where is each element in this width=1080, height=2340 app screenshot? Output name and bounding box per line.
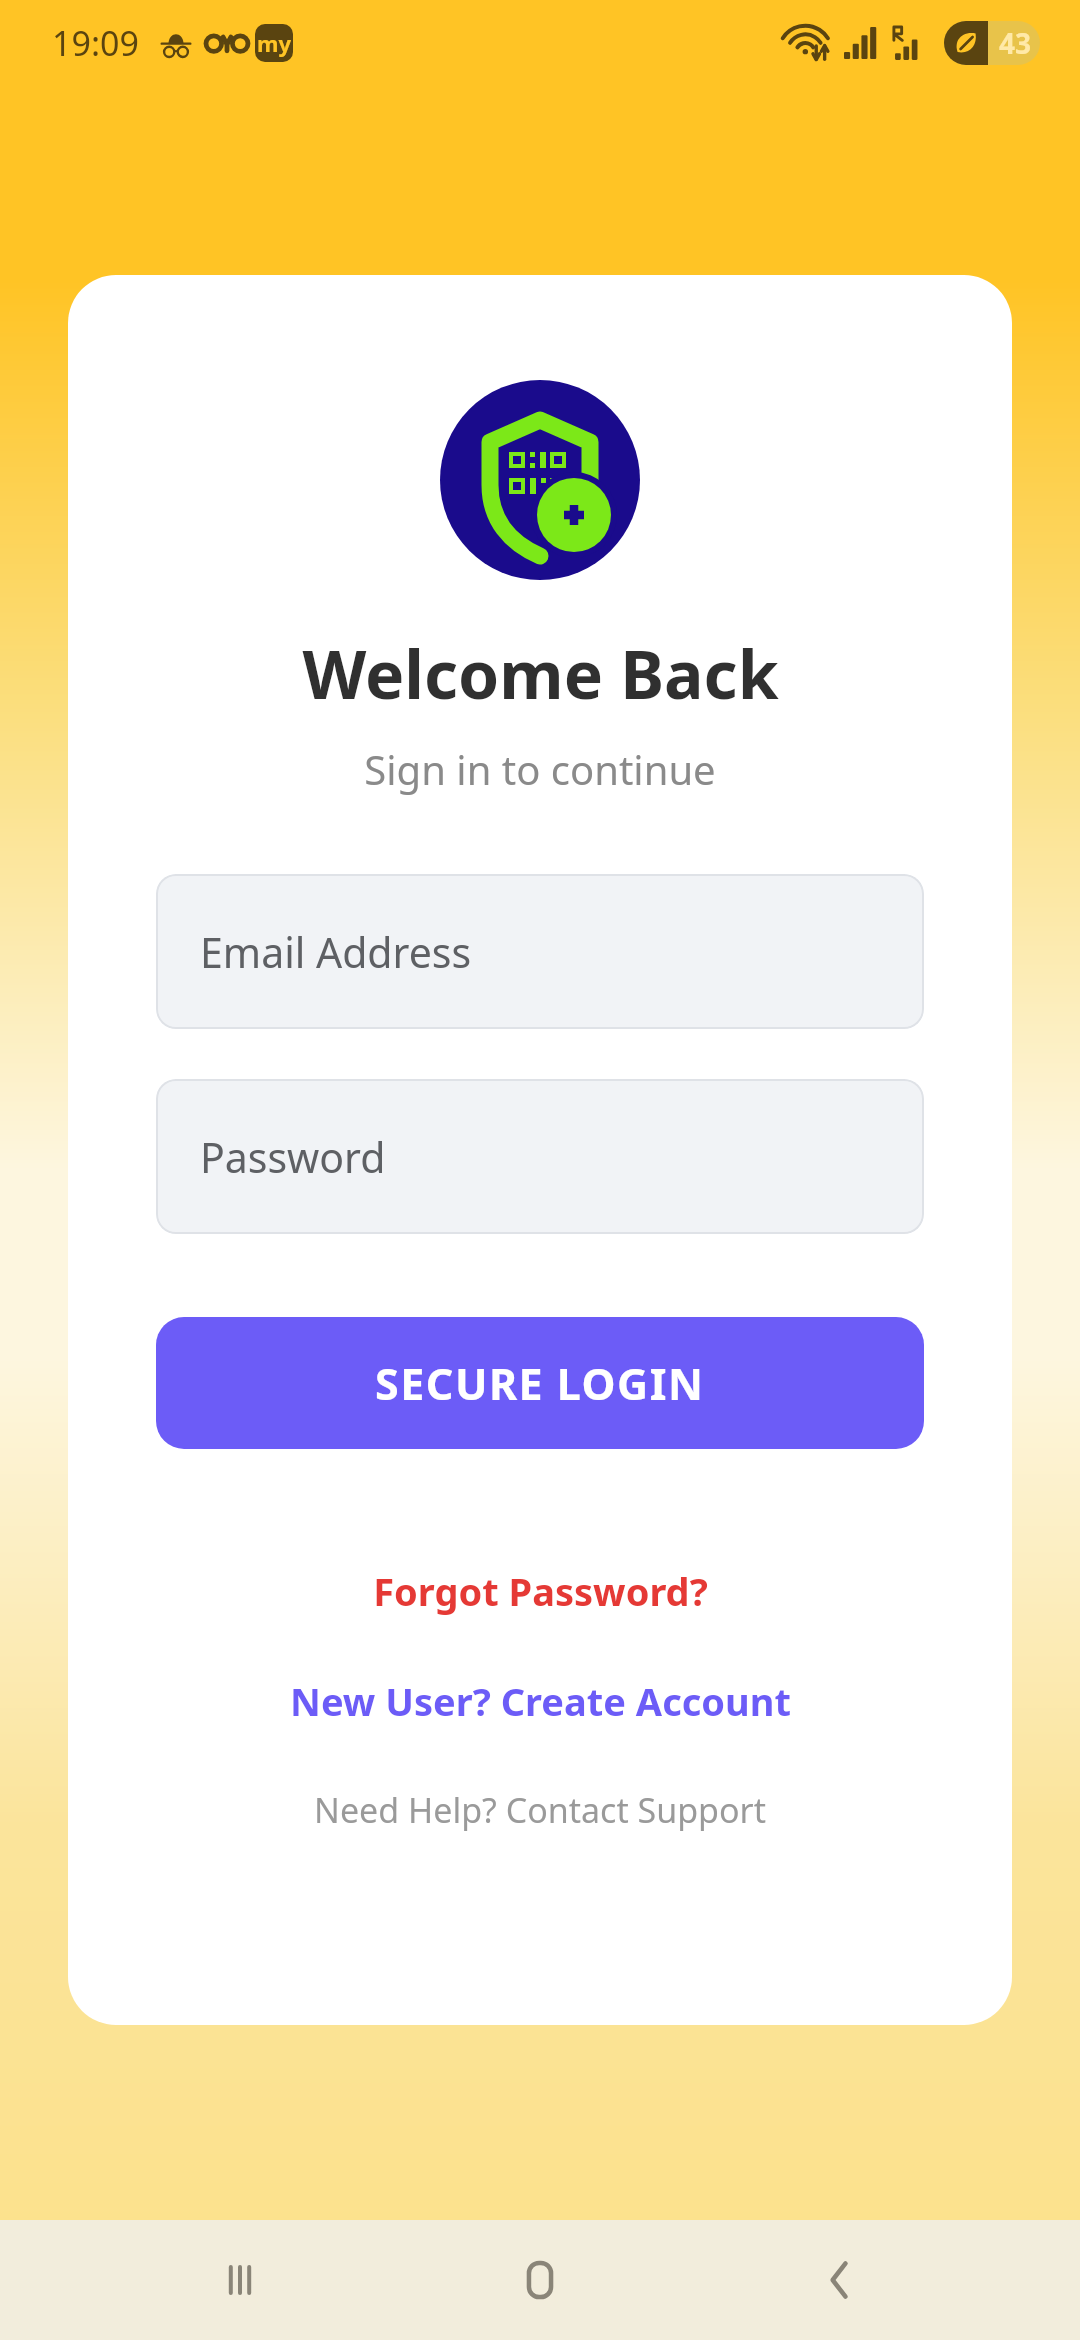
button[interactable]: Back: [780, 2220, 900, 2340]
staticText: 19:09: [52, 20, 139, 66]
button[interactable]: New User? Create Account: [266, 1667, 815, 1735]
staticText: Sign in to continue: [364, 742, 716, 796]
staticText: SECURE LOGIN: [375, 1354, 705, 1413]
staticText: New User? Create Account: [290, 1675, 791, 1727]
button[interactable]: Forgot Password?: [349, 1557, 732, 1625]
button[interactable]: SECURE LOGIN: [156, 1317, 924, 1449]
staticText: Welcome Back: [302, 628, 779, 718]
staticText: Forgot Password?: [373, 1565, 708, 1617]
button[interactable]: Password: [156, 1079, 924, 1234]
button[interactable]: Email Address: [156, 874, 924, 1029]
staticText: Need Help? Contact Support: [314, 1787, 766, 1833]
button[interactable]: Recent apps: [180, 2220, 300, 2340]
button[interactable]: Home: [480, 2220, 600, 2340]
staticText: Email Address: [200, 924, 472, 980]
button[interactable]: Need Help? Contact Support: [290, 1779, 790, 1841]
staticText: Password: [200, 1129, 386, 1185]
staticText: 43: [999, 24, 1032, 62]
staticText: my: [257, 28, 292, 58]
